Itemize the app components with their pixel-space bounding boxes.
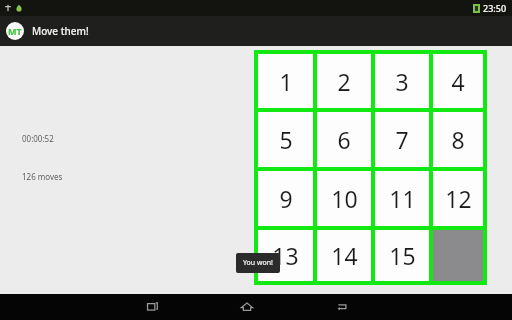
staticText: 6: [337, 124, 351, 155]
button[interactable]: 5: [258, 112, 313, 167]
staticText: 9: [279, 183, 293, 214]
button[interactable]: 6: [317, 112, 371, 167]
staticText: 11: [389, 183, 416, 214]
staticText: 15: [389, 240, 416, 271]
staticText: 1: [279, 66, 293, 97]
button[interactable]: 8: [433, 112, 483, 167]
button[interactable]: 7: [375, 112, 429, 167]
staticText: 10: [331, 183, 358, 214]
staticText: 5: [279, 124, 293, 155]
button[interactable]: 10: [317, 171, 371, 226]
staticText: Move them!: [32, 24, 89, 38]
staticText: MT: [8, 25, 22, 37]
staticText: 14: [331, 240, 358, 271]
button[interactable]: 1: [258, 54, 313, 108]
staticText: 7: [395, 124, 409, 155]
button[interactable]: 4: [433, 54, 483, 108]
staticText: 23:50: [483, 2, 507, 14]
button[interactable]: Home: [223, 294, 271, 320]
button[interactable]: Recents: [128, 294, 176, 320]
staticText: 8: [451, 124, 465, 155]
button[interactable]: 3: [375, 54, 429, 108]
staticText: 00:00:52: [22, 133, 54, 144]
button[interactable]: 15: [375, 230, 429, 281]
button[interactable]: 11: [375, 171, 429, 226]
staticText: 12: [445, 183, 472, 214]
button[interactable]: 12: [433, 171, 483, 226]
staticText: 13: [272, 240, 299, 271]
staticText: You won!: [243, 258, 273, 268]
staticText: 4: [451, 66, 465, 97]
button[interactable]: 14: [317, 230, 371, 281]
button[interactable]: 2: [317, 54, 371, 108]
button[interactable]: Back: [318, 294, 366, 320]
staticText: 2: [337, 66, 351, 97]
staticText: 3: [395, 66, 409, 97]
button[interactable]: 9: [258, 171, 313, 226]
button[interactable]: 13: [258, 230, 313, 281]
staticText: 126 moves: [22, 171, 63, 182]
